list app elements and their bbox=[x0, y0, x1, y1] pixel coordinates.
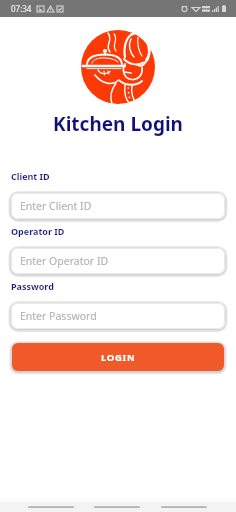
other: App logo bbox=[81, 30, 155, 104]
staticText: Enter Password bbox=[20, 309, 97, 323]
staticText: 07:34 bbox=[11, 3, 32, 14]
staticText: Enter Operator ID bbox=[20, 254, 109, 268]
button[interactable]: Enter Password bbox=[11, 303, 225, 329]
staticText: Enter Client ID bbox=[20, 199, 92, 213]
button[interactable]: Enter Client ID bbox=[11, 193, 225, 219]
staticText: LOGIN bbox=[101, 351, 136, 364]
staticText: Client ID bbox=[11, 170, 50, 182]
button[interactable]: LOGIN bbox=[12, 343, 224, 371]
staticText: Password bbox=[11, 280, 54, 292]
staticText: Kitchen Login bbox=[0, 111, 236, 137]
staticText: Operator ID bbox=[11, 225, 65, 237]
button[interactable]: Enter Operator ID bbox=[11, 248, 225, 274]
